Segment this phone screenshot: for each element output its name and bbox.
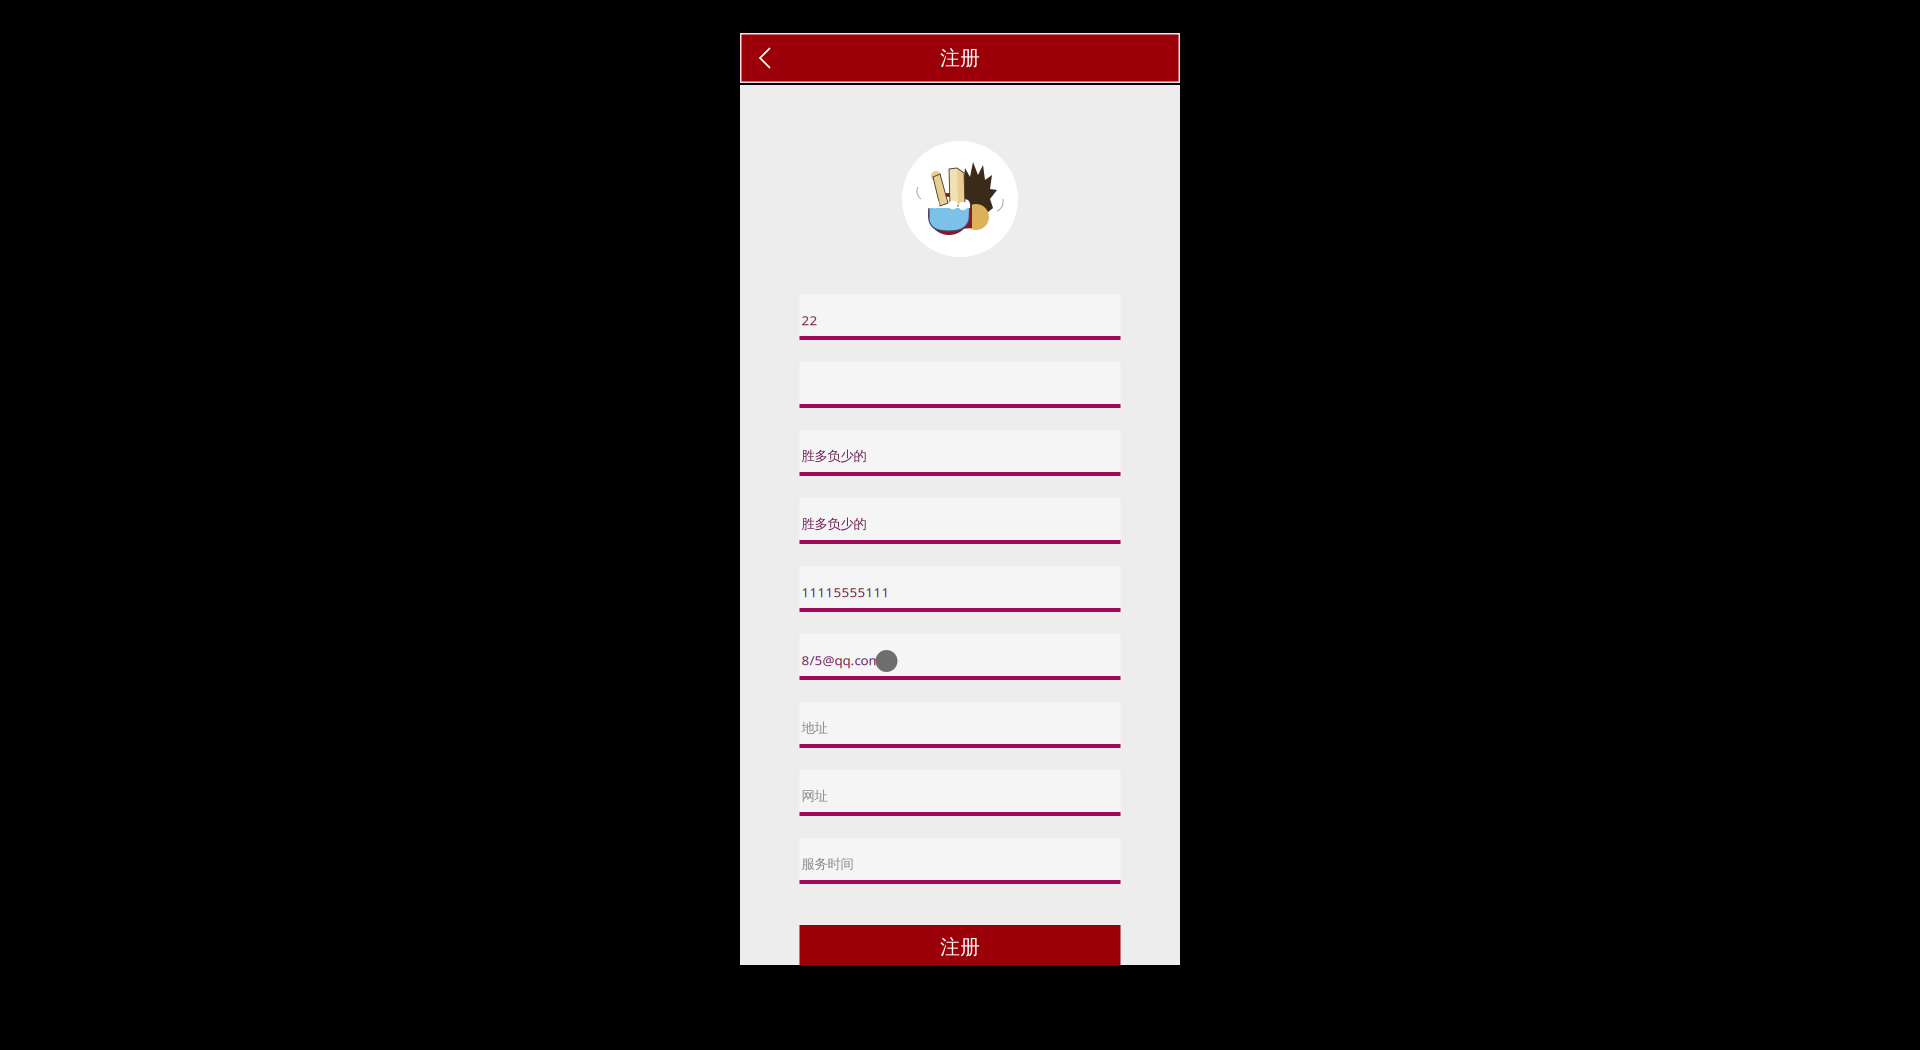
button[interactable]: 服务时间 bbox=[799, 838, 1120, 884]
button[interactable]: 密码 bbox=[799, 362, 1120, 408]
button[interactable]: 胜多负少的 bbox=[799, 430, 1120, 476]
staticText: 网址 bbox=[801, 788, 827, 804]
staticText: 胜多负少的 bbox=[801, 516, 866, 532]
button[interactable]: 地址 bbox=[799, 702, 1120, 748]
button[interactable]: 网址 bbox=[799, 770, 1120, 816]
staticText: 服务时间 bbox=[801, 856, 853, 872]
button[interactable]: 8/5@qq.com bbox=[799, 634, 1120, 680]
button[interactable]: 11115555111 bbox=[799, 566, 1120, 612]
button[interactable]: 返回 bbox=[740, 33, 792, 83]
staticText: 注册 bbox=[940, 935, 980, 959]
button[interactable]: 胜多负少的 bbox=[799, 498, 1120, 544]
staticText: 地址 bbox=[801, 720, 827, 736]
button[interactable]: 上传头像 bbox=[902, 141, 1018, 257]
staticText: 22 bbox=[801, 311, 817, 329]
button[interactable]: 注册 bbox=[799, 925, 1120, 969]
staticText: 11115555111 bbox=[801, 583, 889, 601]
staticText: 注册 bbox=[940, 46, 980, 70]
staticText: 胜多负少的 bbox=[801, 448, 866, 464]
button[interactable]: 22 bbox=[799, 294, 1120, 340]
staticText: 8/5@qq.com bbox=[801, 651, 880, 669]
